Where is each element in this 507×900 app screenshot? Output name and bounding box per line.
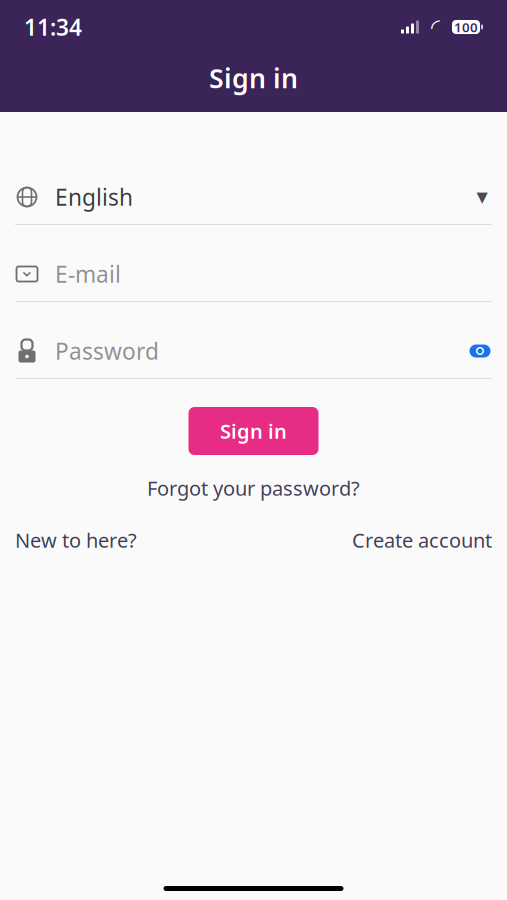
button[interactable]: Sign in <box>188 407 318 455</box>
staticText: ◜ <box>431 14 440 40</box>
button[interactable]: New to here? <box>15 525 137 555</box>
staticText: Sign in <box>209 60 298 96</box>
staticText: New to here? <box>15 527 137 553</box>
button[interactable]: Forgot your password? <box>147 473 360 503</box>
staticText: Forgot your password? <box>147 475 360 501</box>
staticText: Create account <box>352 527 492 553</box>
staticText: E-mail <box>55 259 121 289</box>
staticText: ▼ <box>476 189 487 205</box>
staticText: 100 <box>454 18 478 36</box>
staticText: English <box>55 182 133 212</box>
button[interactable]: English <box>15 170 492 225</box>
staticText: ⌄ <box>19 259 35 281</box>
staticText: Password <box>55 336 159 366</box>
button[interactable]: Create account <box>352 525 492 555</box>
staticText: Sign in <box>220 418 287 444</box>
button[interactable]: Show password <box>468 339 492 363</box>
staticText: 11:34 <box>24 12 82 42</box>
button[interactable]: ⌄ <box>15 247 492 302</box>
